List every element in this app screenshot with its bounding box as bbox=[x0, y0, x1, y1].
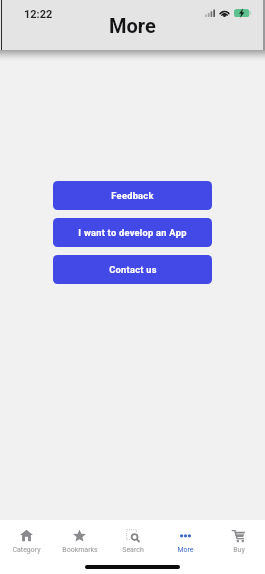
button[interactable]: More bbox=[159, 520, 212, 559]
staticText: More bbox=[109, 14, 156, 37]
staticText: Contact us bbox=[109, 264, 157, 275]
staticText: Feedback bbox=[111, 190, 154, 201]
button[interactable]: I want to develop an App bbox=[53, 218, 212, 247]
other: Bookmarks bbox=[73, 529, 86, 542]
other: Category bbox=[20, 529, 33, 542]
other: Buy bbox=[232, 529, 245, 542]
button[interactable]: Search bbox=[106, 520, 159, 559]
other: Search bbox=[126, 529, 139, 542]
staticText: 12:22 bbox=[24, 8, 53, 21]
button[interactable]: Category bbox=[0, 520, 53, 559]
staticText: More bbox=[177, 546, 194, 554]
staticText: Bookmarks bbox=[62, 546, 98, 554]
button[interactable]: Feedback bbox=[53, 181, 212, 210]
button[interactable]: Buy bbox=[212, 520, 265, 559]
staticText: Category bbox=[12, 546, 41, 554]
button[interactable]: Contact us bbox=[53, 255, 212, 284]
staticText: Buy bbox=[233, 546, 245, 554]
staticText: Search bbox=[122, 546, 144, 554]
other: More bbox=[179, 529, 192, 542]
button[interactable]: Bookmarks bbox=[53, 520, 106, 559]
staticText: I want to develop an App bbox=[78, 227, 187, 238]
